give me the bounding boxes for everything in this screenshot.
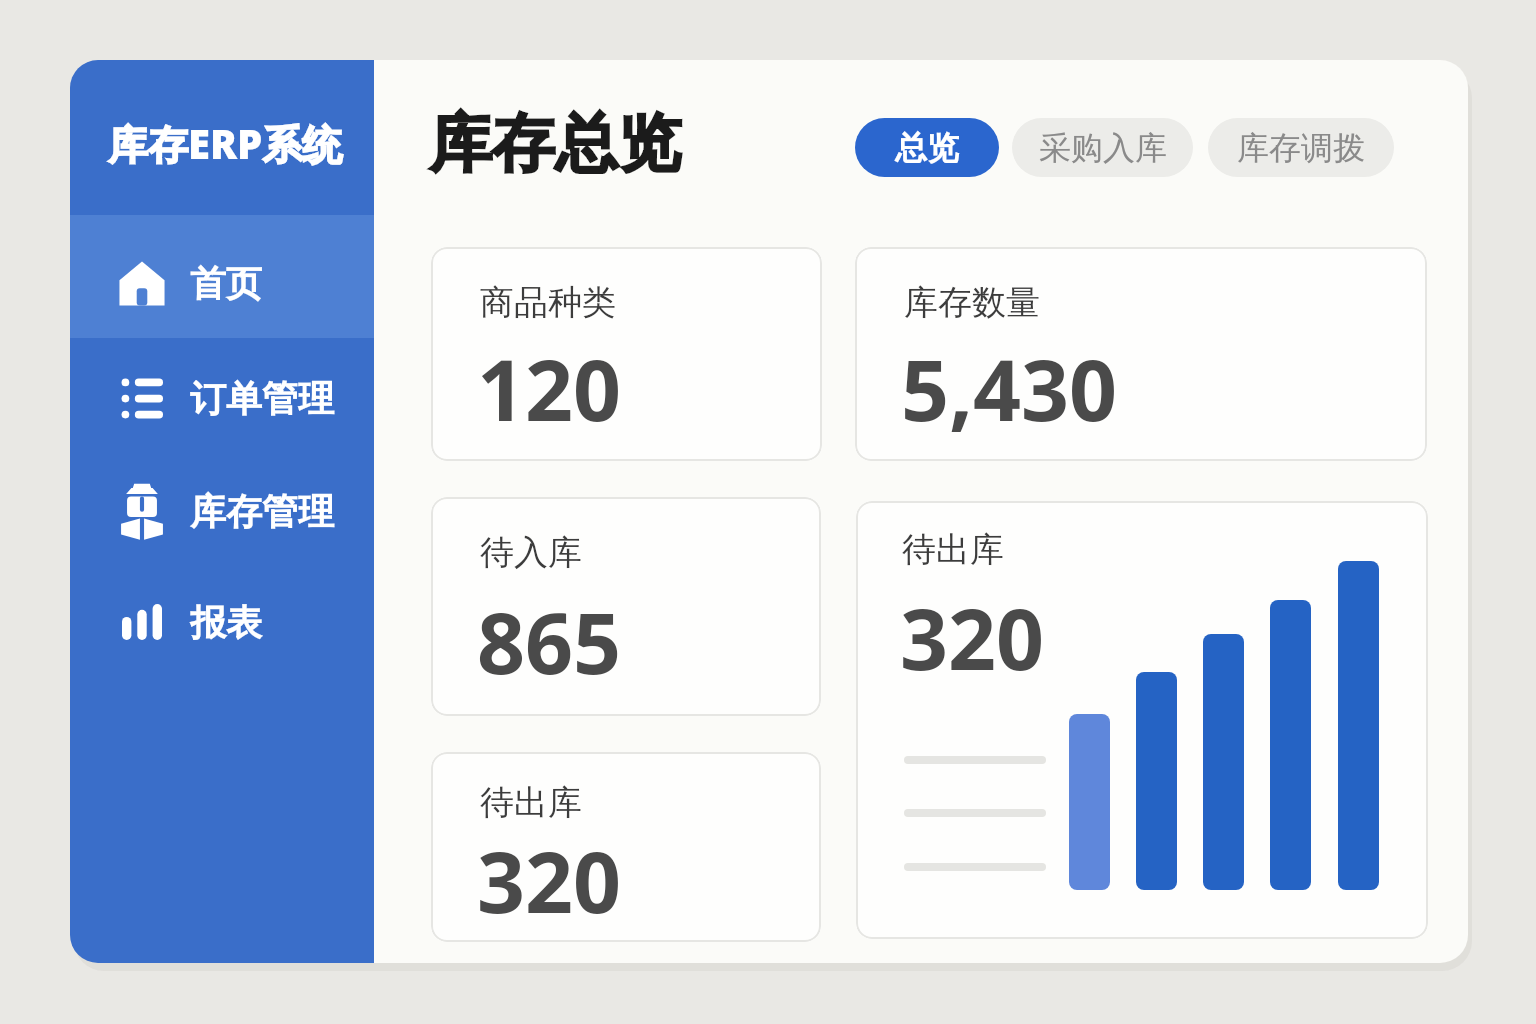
button[interactable]: 商品种类 [431,247,822,461]
staticText: 首页 [190,261,262,306]
staticText: 库存总览 [429,104,681,183]
button[interactable]: 订单管理 [70,354,374,442]
staticText: 订单管理 [190,376,334,421]
button[interactable]: 库存调拨 [1208,118,1394,177]
staticText: 库存管理 [190,489,334,534]
staticText: 120 [477,331,622,445]
button[interactable]: 库存数量 [855,247,1427,461]
staticText: 320 [477,823,622,937]
button[interactable]: 采购入库 [1012,118,1193,177]
button[interactable]: 总览 [855,118,999,177]
staticText: 865 [477,584,622,698]
staticText: 总览 [895,128,959,168]
staticText: 商品种类 [480,281,616,324]
button[interactable]: 首页 [70,239,374,327]
staticText: 待出库 [902,528,1004,571]
staticText: 待出库 [480,781,582,824]
button[interactable]: 待出库 [431,752,821,942]
staticText: 库存调拨 [1237,128,1365,168]
button[interactable]: 库存管理 [70,467,374,555]
staticText: 采购入库 [1039,128,1167,168]
staticText: 320 [900,580,1045,694]
button[interactable]: 待出库 [856,501,1428,939]
button[interactable]: 报表 [70,578,374,666]
staticText: 库存ERP系统 [108,116,343,171]
staticText: 待入库 [480,531,582,574]
staticText: 5,430 [901,331,1118,445]
button[interactable]: 待入库 [431,497,821,716]
staticText: 库存数量 [904,281,1040,324]
staticText: 报表 [190,600,262,645]
